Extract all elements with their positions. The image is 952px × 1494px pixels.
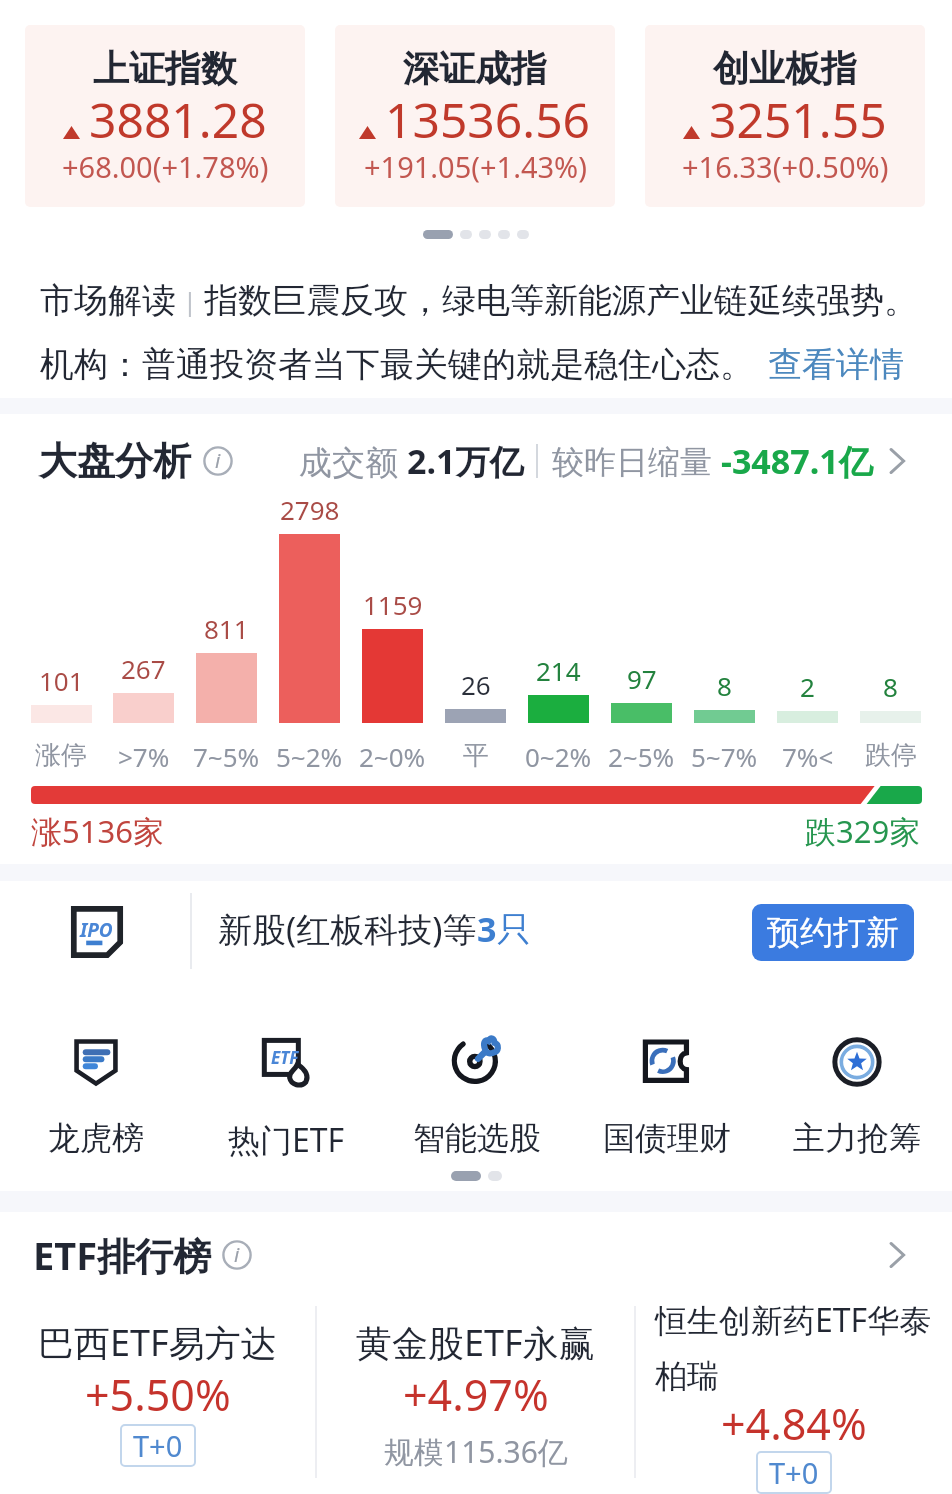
staticText: 跌329家 <box>805 810 921 852</box>
staticText: 5~2% <box>276 739 343 774</box>
button[interactable]: 热门ETF <box>191 1034 382 1162</box>
staticText: 较昨日缩量 <box>552 439 721 483</box>
staticText: 大盘分析 <box>39 437 191 485</box>
button[interactable]: 大盘分析 <box>39 437 915 485</box>
staticText: 成交额 <box>299 439 407 484</box>
staticText: +4.97% <box>403 1365 549 1424</box>
staticText: 国债理财 <box>603 1118 731 1158</box>
staticText: 查看详情 <box>768 343 904 386</box>
staticText: 市场解读 <box>40 279 176 322</box>
staticText: 2~0% <box>359 739 426 774</box>
staticText: 26 <box>461 667 491 702</box>
staticText: 2 <box>800 669 815 704</box>
staticText: 巴西ETF易方达 <box>38 1318 277 1367</box>
staticText: 214 <box>536 653 581 688</box>
button[interactable]: ETF排行榜 <box>33 1229 915 1281</box>
button[interactable]: 上证指数 <box>25 25 305 207</box>
staticText: 恒生创新药ETF华泰柏瑞 <box>655 1298 933 1397</box>
other: 主力抢筹 <box>829 1034 885 1090</box>
staticText: 267 <box>121 651 166 686</box>
staticText: 涨停 <box>35 739 87 772</box>
button[interactable]: 查看详情 <box>768 343 904 386</box>
staticText: ETF排行榜 <box>33 1229 212 1281</box>
other: 热门ETF <box>259 1034 315 1090</box>
staticText: 2.1万亿 <box>407 438 524 484</box>
staticText: 涨5136家 <box>31 810 164 852</box>
staticText: 平 <box>463 739 489 772</box>
other: 智能选股 <box>449 1034 505 1090</box>
other: 龙虎榜 <box>68 1034 124 1090</box>
staticText: T+0 <box>133 1426 183 1465</box>
staticText: 97 <box>627 661 657 696</box>
other: Info <box>222 1240 252 1270</box>
staticText: +68.00(+1.78%) <box>62 147 269 186</box>
button[interactable]: 深证成指 <box>335 25 615 207</box>
button[interactable]: 主力抢筹 <box>762 1034 952 1158</box>
staticText: 深证成指 <box>403 46 547 91</box>
staticText: 3251.55 <box>709 87 887 152</box>
staticText: 龙虎榜 <box>48 1118 144 1158</box>
staticText: 创业板指 <box>713 46 857 91</box>
staticText: T+0 <box>769 1453 819 1492</box>
staticText: ETF <box>271 1046 299 1069</box>
staticText: 指数巨震反攻，绿电等新能源产业链延续强势。 <box>204 279 918 322</box>
staticText: 0~2% <box>525 739 592 774</box>
staticText: +191.05(+1.43%) <box>364 147 587 186</box>
staticText: 1159 <box>363 587 423 622</box>
staticText: >7% <box>118 739 170 774</box>
staticText: 5~7% <box>691 739 758 774</box>
staticText: 黄金股ETF永赢 <box>356 1318 595 1367</box>
staticText: 8 <box>883 669 898 704</box>
staticText: 101 <box>39 663 84 698</box>
staticText: 只 <box>497 908 531 951</box>
staticText: 3 <box>477 906 497 952</box>
other: More <box>885 1237 915 1273</box>
button[interactable]: 黄金股ETF永赢 <box>317 1298 634 1494</box>
staticText: -3487.1亿 <box>721 438 873 484</box>
staticText: 13536.56 <box>385 87 591 152</box>
staticText: 规模115.36亿 <box>384 1431 568 1472</box>
staticText: +4.84% <box>721 1394 867 1453</box>
staticText: 3881.28 <box>89 87 267 152</box>
staticText: 主力抢筹 <box>793 1118 921 1158</box>
button[interactable]: 智能选股 <box>382 1034 572 1158</box>
staticText: 811 <box>204 611 249 646</box>
staticText: i <box>215 446 221 474</box>
button[interactable]: 恒生创新药ETF华泰柏瑞 <box>636 1298 952 1494</box>
staticText: 8 <box>717 668 732 703</box>
staticText: IPO <box>80 917 113 943</box>
staticText: +5.50% <box>85 1365 231 1424</box>
button[interactable]: 巴西ETF易方达 <box>0 1298 315 1494</box>
staticText: 机构：普通投资者当下最关键的就是稳住心态。 <box>40 343 754 386</box>
staticText: 热门ETF <box>228 1118 345 1162</box>
button[interactable]: 预约打新 <box>752 904 914 961</box>
staticText: 上证指数 <box>93 46 237 91</box>
button[interactable]: IPO <box>0 881 952 981</box>
staticText: 2798 <box>280 492 340 527</box>
staticText: 2~5% <box>608 739 675 774</box>
staticText: 智能选股 <box>413 1118 541 1158</box>
other: Info <box>203 446 233 476</box>
staticText: 7%< <box>782 739 834 774</box>
staticText: 新股(红板科技)等 <box>218 906 477 952</box>
other: More <box>885 443 915 479</box>
other: 国债理财 <box>639 1034 695 1090</box>
staticText: 跌停 <box>865 739 917 772</box>
staticText: 预约打新 <box>767 912 899 954</box>
staticText: 7~5% <box>193 739 260 774</box>
button[interactable]: 龙虎榜 <box>0 1034 191 1158</box>
staticText: i <box>234 1240 240 1268</box>
button[interactable]: 创业板指 <box>645 25 925 207</box>
staticText: | <box>176 283 204 318</box>
staticText: +16.33(+0.50%) <box>682 147 889 186</box>
button[interactable]: 国债理财 <box>572 1034 762 1158</box>
